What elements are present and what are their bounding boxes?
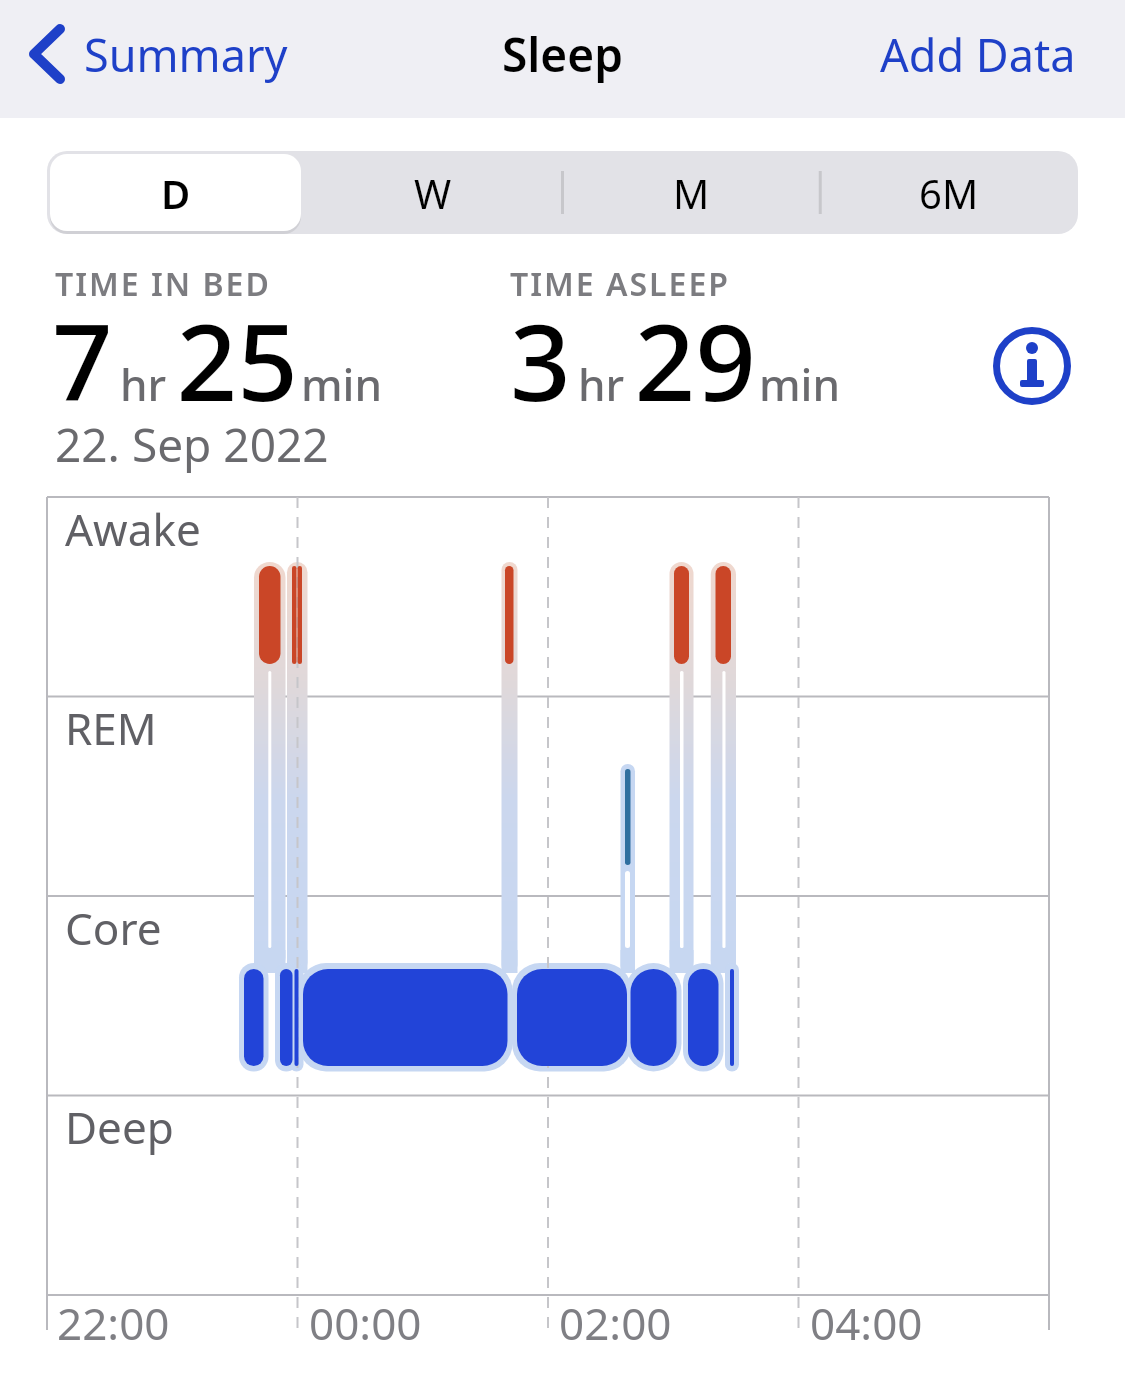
staticText: 6M xyxy=(919,166,979,220)
staticText: 02:00 xyxy=(559,1293,672,1353)
staticText: 00:00 xyxy=(309,1293,422,1353)
staticText: Core xyxy=(65,898,162,958)
staticText: Deep xyxy=(65,1097,174,1157)
staticText: REM xyxy=(65,698,157,758)
staticText: 22. Sep 2022 xyxy=(55,413,329,476)
staticText: Awake xyxy=(65,499,201,559)
button[interactable]: Summary xyxy=(26,23,288,85)
button[interactable]: W xyxy=(304,151,562,234)
staticText: Sleep xyxy=(502,23,623,86)
button[interactable]: M xyxy=(562,151,820,234)
button[interactable]: D xyxy=(47,151,304,234)
button[interactable]: Add Data xyxy=(880,24,1076,85)
staticText: M xyxy=(673,166,710,220)
staticText: 7 hr 25 min xyxy=(52,288,383,432)
staticText: TIME IN BED xyxy=(55,262,271,306)
staticText: 3 hr 29 min xyxy=(510,288,841,432)
staticText: D xyxy=(161,166,191,220)
staticText: 22:00 xyxy=(57,1293,170,1353)
button[interactable]: 6M xyxy=(820,151,1078,234)
staticText: Summary xyxy=(84,24,288,85)
button[interactable] xyxy=(994,328,1070,404)
staticText: W xyxy=(414,166,452,220)
staticText: 04:00 xyxy=(810,1293,923,1353)
staticText: Add Data xyxy=(880,24,1076,85)
staticText: TIME ASLEEP xyxy=(510,262,730,306)
